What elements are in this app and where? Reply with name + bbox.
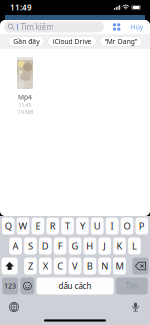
- staticText: G: [71, 240, 78, 252]
- button[interactable]: P: [135, 217, 148, 234]
- staticText: D: [42, 240, 49, 252]
- button[interactable]: iCloud Drive: [47, 37, 96, 46]
- staticText: Gần đây: [13, 37, 39, 46]
- button[interactable]: R: [46, 217, 59, 234]
- staticText: J: [103, 240, 106, 252]
- staticText: V: [72, 260, 78, 272]
- staticText: F: [58, 240, 63, 252]
- staticText: 11:49: [10, 2, 32, 13]
- button[interactable]: G: [69, 237, 81, 254]
- staticText: E: [35, 220, 40, 232]
- staticText: Q: [5, 220, 12, 232]
- button[interactable]: A: [9, 237, 22, 254]
- staticText: iCloud Drive: [52, 37, 91, 46]
- button[interactable]: D: [39, 237, 52, 254]
- staticText: Tìm: [125, 281, 138, 291]
- staticText: B: [87, 260, 93, 272]
- staticText: T: [65, 220, 70, 232]
- button[interactable]: Emoji: [20, 277, 34, 294]
- staticText: Tìm kiếm: [20, 22, 53, 32]
- staticText: P: [139, 220, 145, 232]
- staticText: H: [86, 240, 93, 252]
- staticText: C: [57, 260, 63, 272]
- button[interactable]: K: [113, 237, 126, 254]
- button[interactable]: T: [61, 217, 74, 234]
- button[interactable]: N: [98, 257, 111, 274]
- staticText: A: [13, 240, 19, 252]
- button[interactable]: S: [24, 237, 37, 254]
- staticText: 123: [4, 282, 16, 290]
- button[interactable]: Gần đây: [8, 37, 44, 46]
- staticText: U: [94, 220, 101, 232]
- staticText: M: [115, 260, 123, 272]
- staticText: R: [50, 220, 56, 232]
- button[interactable]: Switch keyboard: [6, 299, 22, 315]
- button[interactable]: Y: [76, 217, 89, 234]
- staticText: Hủy: [131, 23, 143, 31]
- staticText: Z: [28, 260, 33, 272]
- staticText: N: [101, 260, 108, 272]
- button[interactable]: W: [17, 217, 29, 234]
- staticText: K: [116, 240, 122, 252]
- button[interactable]: 123: [2, 277, 18, 294]
- button[interactable]: I: [106, 217, 118, 234]
- staticText: Y: [80, 220, 85, 232]
- staticText: I: [111, 220, 114, 232]
- button[interactable]: V: [69, 257, 81, 274]
- button[interactable]: Dictate: [127, 298, 144, 315]
- button[interactable]: U: [91, 217, 104, 234]
- staticText: X: [43, 260, 48, 272]
- button[interactable]: Z: [24, 257, 37, 274]
- button[interactable]: M: [113, 257, 126, 274]
- button[interactable]: H: [83, 237, 96, 254]
- button[interactable]: L: [128, 237, 141, 254]
- staticText: S: [28, 240, 33, 252]
- staticText: “Mr Dang”: [105, 37, 137, 46]
- button[interactable]: Delete: [132, 257, 148, 274]
- button[interactable]: Shift: [2, 257, 18, 274]
- button[interactable]: X: [39, 257, 52, 274]
- button[interactable]: E: [32, 217, 44, 234]
- button[interactable]: Grid view: [108, 20, 125, 34]
- staticText: dấu cách: [59, 281, 92, 291]
- button[interactable]: dấu cách: [37, 277, 114, 294]
- button[interactable]: B: [83, 257, 96, 274]
- staticText: O: [123, 220, 130, 232]
- staticText: W: [18, 220, 27, 232]
- button[interactable]: Hủy: [129, 20, 145, 34]
- button[interactable]: Q: [2, 217, 15, 234]
- button[interactable]: O: [121, 217, 133, 234]
- button[interactable]: Mp4: [8, 57, 42, 115]
- button[interactable]: “Mr Dang”: [100, 37, 142, 46]
- button[interactable]: C: [54, 257, 66, 274]
- staticText: 7,9 MB: [17, 108, 33, 115]
- button[interactable]: F: [54, 237, 66, 254]
- button[interactable]: J: [98, 237, 111, 254]
- staticText: L: [132, 240, 137, 252]
- staticText: 11:45: [18, 101, 31, 108]
- staticText: Mp4: [18, 92, 32, 101]
- button[interactable]: Tìm: [116, 277, 148, 294]
